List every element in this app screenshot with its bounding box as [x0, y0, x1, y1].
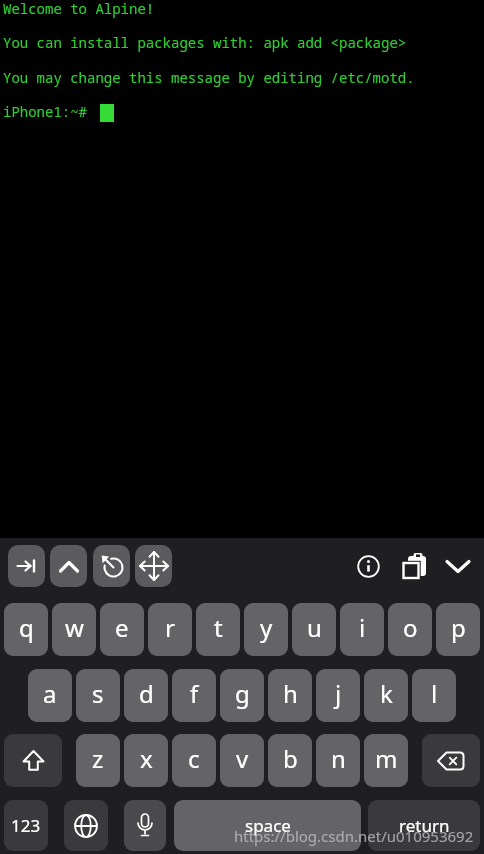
button[interactable]	[393, 545, 437, 587]
button[interactable]: i	[340, 603, 384, 656]
staticText: r	[165, 611, 175, 644]
button[interactable]: v	[220, 734, 264, 787]
staticText: y	[260, 611, 273, 644]
button[interactable]: m	[364, 734, 408, 787]
button[interactable]: p	[436, 603, 480, 656]
button[interactable]	[50, 545, 87, 587]
button[interactable]: y	[244, 603, 288, 656]
staticText: q	[19, 611, 34, 644]
button[interactable]	[4, 734, 62, 787]
button[interactable]: e	[100, 603, 144, 656]
button[interactable]: q	[4, 603, 48, 656]
button[interactable]: space	[174, 800, 361, 851]
button[interactable]: f	[172, 669, 216, 722]
button[interactable]: s	[76, 669, 120, 722]
button[interactable]: c	[172, 734, 216, 787]
button[interactable]	[441, 545, 475, 587]
button[interactable]: j	[316, 669, 360, 722]
button[interactable]: a	[28, 669, 72, 722]
staticText: z	[92, 742, 104, 775]
button[interactable]: o	[388, 603, 432, 656]
staticText: space	[245, 814, 291, 837]
staticText: Welcome to Alpine!	[3, 0, 155, 18]
button[interactable]: b	[268, 734, 312, 787]
staticText: i	[359, 611, 366, 644]
button[interactable]: l	[412, 669, 456, 722]
staticText: iPhone1:~#	[3, 102, 87, 121]
staticText: x	[140, 742, 153, 775]
staticText: w	[65, 611, 84, 644]
button[interactable]	[64, 800, 108, 851]
button[interactable]	[124, 800, 166, 851]
staticText: d	[139, 677, 154, 710]
staticText: g	[235, 677, 250, 710]
button[interactable]: r	[148, 603, 192, 656]
button[interactable]: n	[316, 734, 360, 787]
staticText: f	[190, 677, 199, 710]
button[interactable]: w	[52, 603, 96, 656]
staticText: v	[236, 742, 249, 775]
button[interactable]: 123	[4, 800, 48, 851]
staticText: You can install packages with: apk add <…	[3, 33, 407, 52]
button[interactable]: u	[292, 603, 336, 656]
staticText: e	[115, 611, 129, 644]
staticText: m	[375, 742, 398, 775]
staticText: https://blog.csdn.net/u010953692	[234, 826, 474, 846]
staticText: j	[335, 677, 342, 710]
button[interactable]: x	[124, 734, 168, 787]
button[interactable]: h	[268, 669, 312, 722]
staticText: a	[43, 677, 57, 710]
button[interactable]: g	[220, 669, 264, 722]
button[interactable]	[8, 545, 45, 587]
staticText: 123	[11, 814, 41, 837]
staticText: o	[403, 611, 418, 644]
staticText: s	[92, 677, 104, 710]
staticText: p	[451, 611, 466, 644]
button[interactable]: d	[124, 669, 168, 722]
button[interactable]	[347, 545, 390, 587]
staticText: return	[399, 814, 450, 837]
staticText: b	[283, 742, 298, 775]
button[interactable]: k	[364, 669, 408, 722]
staticText: You may change this message by editing /…	[3, 68, 415, 87]
staticText: l	[431, 677, 438, 710]
staticText: n	[331, 742, 346, 775]
button[interactable]: t	[196, 603, 240, 656]
button[interactable]: return	[368, 800, 480, 851]
button[interactable]	[422, 734, 480, 787]
staticText: k	[380, 677, 393, 710]
staticText: t	[214, 611, 223, 644]
button[interactable]	[93, 545, 130, 587]
button[interactable]: z	[76, 734, 120, 787]
staticText: h	[283, 677, 298, 710]
staticText: u	[307, 611, 322, 644]
button[interactable]	[135, 545, 172, 587]
staticText: c	[188, 742, 200, 775]
